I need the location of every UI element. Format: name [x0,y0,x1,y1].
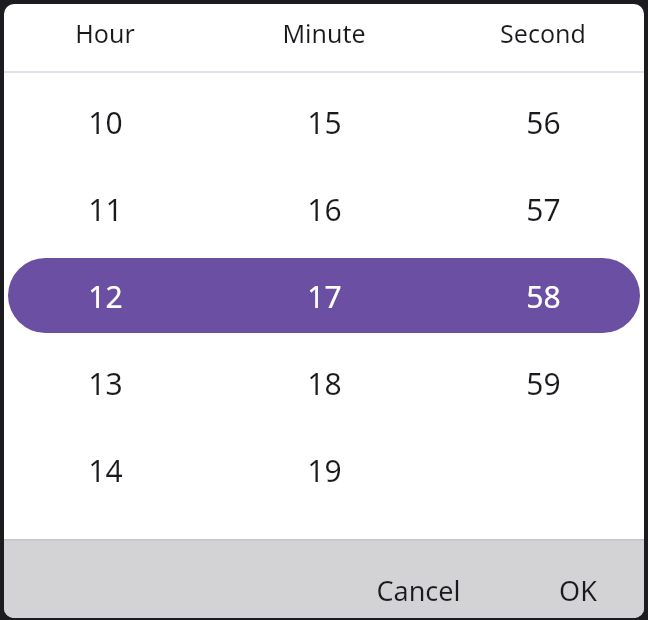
staticText: 13 [88,363,123,404]
button[interactable]: 11 [5,169,205,249]
button[interactable]: 59 [443,343,643,423]
button[interactable]: Cancel [328,560,508,618]
button[interactable]: 19 [224,430,424,510]
staticText: 58 [526,276,561,317]
staticText: 19 [307,450,342,491]
staticText: 10 [88,102,123,143]
staticText: Cancel [376,572,461,609]
staticText: Minute [282,16,366,50]
button[interactable]: 56 [443,82,643,162]
staticText: 14 [88,450,123,491]
staticText: 56 [526,102,561,143]
staticText: Hour [75,16,135,50]
staticText: 12 [88,276,123,317]
button[interactable]: 16 [224,169,424,249]
staticText: OK [559,572,597,609]
staticText: 11 [88,189,123,230]
button[interactable]: 15 [224,82,424,162]
staticText: 57 [526,189,561,230]
staticText: Second [500,16,586,50]
button[interactable]: 14 [5,430,205,510]
button[interactable]: 58 [443,256,643,336]
button[interactable]: OK [508,560,644,618]
staticText: 16 [307,189,342,230]
button[interactable]: 12 [5,256,205,336]
staticText: 15 [307,102,342,143]
button[interactable]: 13 [5,343,205,423]
button[interactable]: 17 [224,256,424,336]
button[interactable]: 10 [5,82,205,162]
button[interactable]: 57 [443,169,643,249]
button[interactable]: 18 [224,343,424,423]
staticText: 17 [307,276,342,317]
staticText: 18 [307,363,342,404]
staticText: 59 [526,363,561,404]
